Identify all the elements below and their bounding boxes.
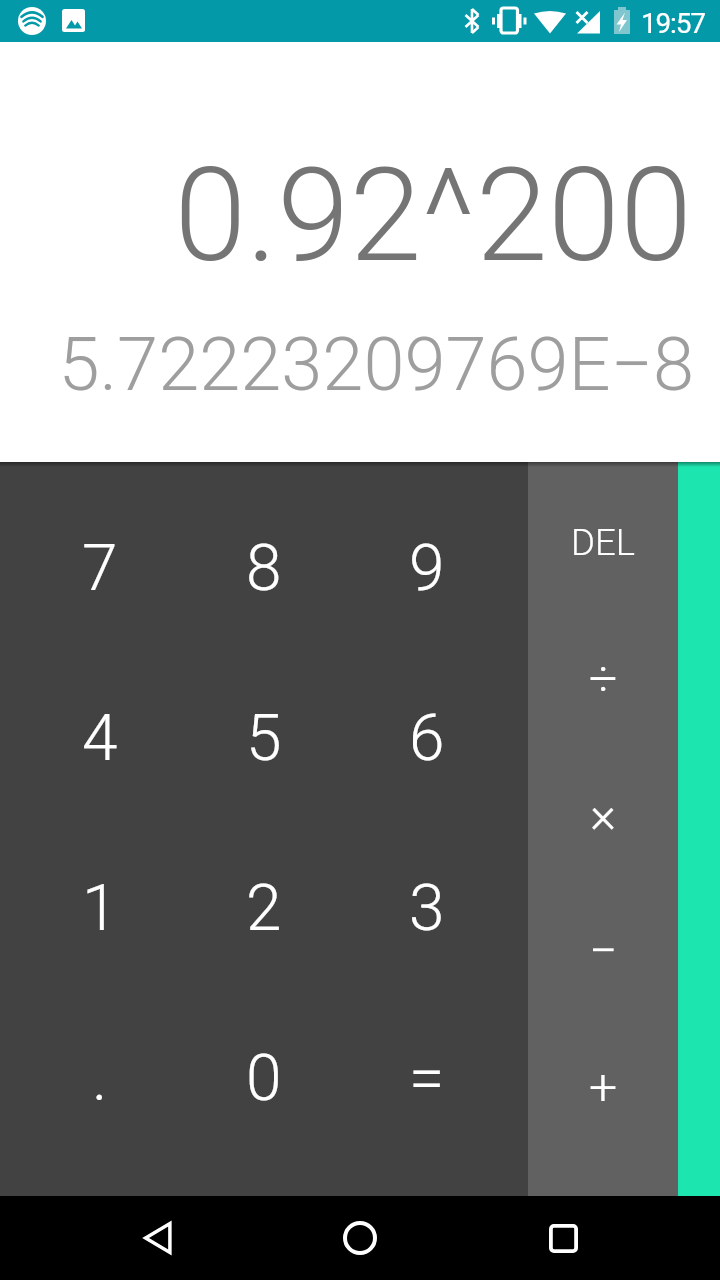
staticText: =: [409, 1041, 445, 1116]
staticText: ×: [590, 786, 617, 845]
staticText: 5.72223209769E−8: [58, 321, 694, 408]
staticText: 2: [246, 871, 282, 946]
staticText: +: [589, 1058, 618, 1117]
staticText: 19:57: [641, 7, 705, 40]
button[interactable]: ÷: [528, 611, 678, 747]
staticText: 4: [82, 701, 118, 776]
button[interactable]: 6: [345, 653, 508, 823]
staticText: −: [589, 922, 618, 981]
button[interactable]: Home: [320, 1198, 400, 1278]
staticText: 8: [246, 531, 282, 606]
staticText: .: [92, 1041, 108, 1116]
button[interactable]: Recent apps: [523, 1198, 603, 1278]
button[interactable]: 5: [182, 653, 345, 823]
button[interactable]: 0: [182, 993, 345, 1163]
staticText: 0: [246, 1041, 282, 1116]
staticText: 7: [82, 531, 118, 606]
button[interactable]: DEL: [528, 474, 678, 611]
staticText: 3: [409, 871, 445, 946]
button[interactable]: 4: [18, 653, 182, 823]
staticText: DEL: [571, 521, 635, 564]
button[interactable]: Back: [120, 1198, 200, 1278]
button[interactable]: .: [18, 993, 182, 1163]
button[interactable]: Advanced pad: [678, 462, 720, 1196]
button[interactable]: +: [528, 1019, 678, 1155]
staticText: 6: [409, 701, 445, 776]
button[interactable]: 8: [182, 484, 345, 653]
button[interactable]: 9: [345, 484, 508, 653]
button[interactable]: −: [528, 883, 678, 1019]
button[interactable]: =: [345, 993, 508, 1163]
staticText: 9: [409, 531, 445, 606]
staticText: 1: [82, 871, 118, 946]
button[interactable]: ×: [528, 747, 678, 883]
button[interactable]: 7: [18, 484, 182, 653]
staticText: 0.92^200: [174, 139, 692, 291]
button[interactable]: 2: [182, 823, 345, 993]
button[interactable]: 1: [18, 823, 182, 993]
staticText: 5: [246, 701, 282, 776]
staticText: ÷: [589, 650, 618, 709]
button[interactable]: 3: [345, 823, 508, 993]
